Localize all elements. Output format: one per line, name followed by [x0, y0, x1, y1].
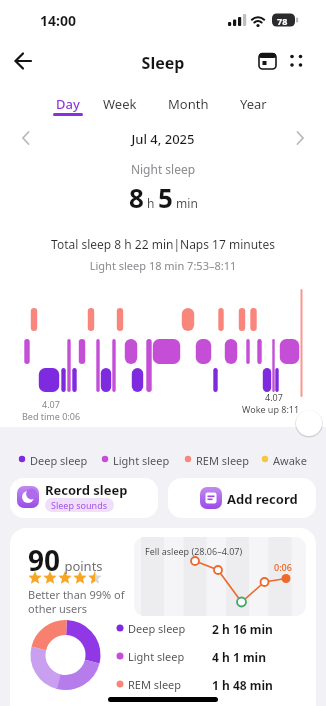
- staticText: Deep sleep: [30, 453, 88, 468]
- staticText: Light sleep: [113, 453, 170, 468]
- staticText: 5: [158, 180, 173, 215]
- staticText: 8: [129, 180, 144, 215]
- staticText: Better than 99% of: [28, 587, 125, 602]
- staticText: Deep sleep: [128, 621, 186, 636]
- staticText: Woke up 8:11: [242, 403, 300, 415]
- staticText: Sleep sounds: [51, 499, 108, 511]
- staticText: Sleep: [0, 52, 326, 74]
- staticText: Record sleep: [45, 481, 128, 499]
- staticText: Bed time 0:06: [22, 410, 81, 422]
- staticText: Year: [240, 95, 267, 113]
- staticText: points: [61, 557, 103, 575]
- staticText: min: [173, 195, 198, 211]
- staticText: Day: [56, 95, 80, 113]
- staticText: other users: [28, 601, 88, 616]
- staticText: 90: [28, 541, 61, 579]
- staticText: 0:06: [274, 561, 292, 573]
- staticText: 4.07: [42, 398, 60, 410]
- staticText: Awake: [273, 453, 307, 468]
- staticText: h: [144, 195, 158, 211]
- staticText: Light sleep: [128, 649, 185, 664]
- staticText: Add record: [227, 490, 298, 508]
- staticText: 1 h 48 min: [212, 677, 273, 693]
- staticText: Light sleep 18 min 7:53–8:11: [0, 258, 326, 273]
- staticText: Total sleep 8 h 22 min|Naps 17 minutes: [0, 236, 326, 252]
- staticText: Jul 4, 2025: [0, 130, 326, 148]
- staticText: 78: [277, 15, 288, 27]
- staticText: REM sleep: [128, 677, 182, 692]
- staticText: Night sleep: [0, 161, 326, 177]
- staticText: 4.07: [265, 391, 283, 403]
- staticText: 14:00: [40, 11, 76, 30]
- staticText: Week: [103, 95, 137, 113]
- staticText: Month: [168, 95, 209, 113]
- staticText: Fell asleep (28.06–4.07): [145, 545, 243, 557]
- staticText: REM sleep: [196, 453, 250, 468]
- staticText: 2 h 16 min: [212, 621, 273, 637]
- staticText: 4 h 1 min: [212, 649, 266, 665]
